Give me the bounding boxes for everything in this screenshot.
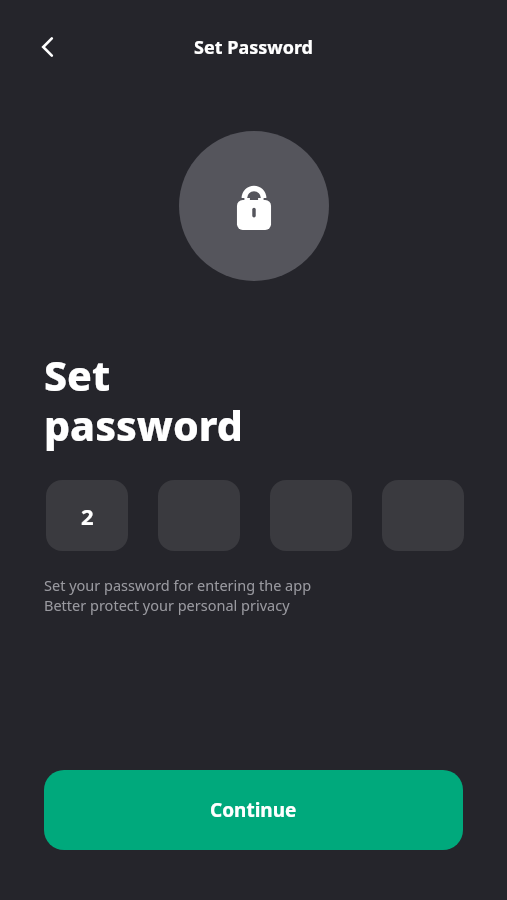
button[interactable]: Empty digit bbox=[270, 480, 352, 551]
button[interactable]: Continue bbox=[44, 770, 463, 850]
staticText: 2 bbox=[81, 501, 94, 531]
staticText: Set your password for entering the app bbox=[44, 575, 312, 595]
button[interactable]: Empty digit bbox=[382, 480, 464, 551]
button[interactable]: Digit 2 bbox=[46, 480, 128, 551]
staticText: Set Password bbox=[194, 35, 313, 60]
button[interactable]: Empty digit bbox=[158, 480, 240, 551]
staticText: Set password bbox=[44, 347, 243, 453]
staticText: Continue bbox=[210, 797, 297, 823]
staticText: Better protect your personal privacy bbox=[44, 595, 290, 615]
button[interactable]: Back bbox=[26, 25, 70, 69]
